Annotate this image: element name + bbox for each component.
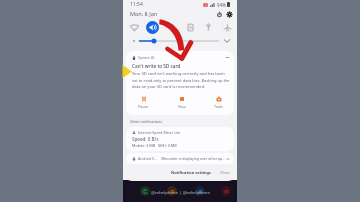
staticText: Tools bbox=[214, 104, 223, 109]
button[interactable]: App icon bbox=[140, 186, 150, 196]
button[interactable]: App icon bbox=[195, 186, 205, 196]
button[interactable]: Bluetooth bbox=[166, 21, 179, 34]
button[interactable]: Tools bbox=[208, 95, 229, 110]
button[interactable]: Wi-Fi bbox=[128, 21, 141, 34]
staticText: Mobile: 3 MB WiFi: 0 MB bbox=[132, 143, 177, 148]
staticText: Notification settings bbox=[171, 170, 212, 175]
staticText: @rahelphone | @rahelphone bbox=[151, 189, 210, 195]
staticText: Stop bbox=[178, 104, 186, 109]
button[interactable]: Pause bbox=[132, 95, 155, 110]
button[interactable]: Sound bbox=[146, 21, 159, 34]
staticText: Mon, 8 Jan bbox=[130, 10, 158, 17]
button[interactable]: Airplane mode bbox=[221, 21, 234, 34]
staticText: Internet Speed Meter Lite bbox=[138, 130, 181, 135]
staticText: Silent notifications bbox=[130, 119, 162, 124]
button[interactable]: Flashlight bbox=[202, 21, 215, 34]
button[interactable]: Power off bbox=[214, 9, 224, 19]
staticText: Pause bbox=[138, 104, 149, 109]
staticText: Speed: 0 B/s bbox=[132, 136, 159, 142]
button[interactable]: App icon bbox=[167, 186, 177, 196]
button[interactable]: Stop bbox=[172, 95, 192, 110]
button[interactable]: Clear bbox=[218, 169, 233, 176]
staticText: Android S... bbox=[138, 156, 157, 161]
staticText: XRecorder is displaying over other ap... bbox=[161, 156, 226, 161]
staticText: Your SD card isn't working correctly and… bbox=[132, 71, 230, 89]
staticText: 94% bbox=[217, 2, 226, 8]
button[interactable]: App icon bbox=[221, 186, 231, 196]
button[interactable]: Notification settings bbox=[169, 169, 214, 176]
staticText: 11:54 bbox=[130, 1, 143, 8]
staticText: System UI bbox=[138, 55, 155, 60]
staticText: Can't write to SD card bbox=[132, 63, 181, 69]
staticText: Clear bbox=[220, 170, 231, 175]
button[interactable]: Settings bbox=[224, 9, 234, 19]
button[interactable]: Auto rotate bbox=[184, 21, 197, 34]
